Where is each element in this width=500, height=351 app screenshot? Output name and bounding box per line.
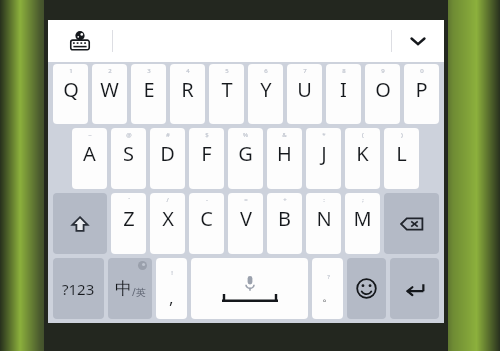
staticText: Q xyxy=(63,76,79,103)
button[interactable]: ; xyxy=(345,193,380,254)
staticText: 9 xyxy=(381,67,385,75)
staticText: ) xyxy=(401,131,403,139)
staticText: S xyxy=(123,140,134,167)
button[interactable]: $ xyxy=(189,128,224,189)
button[interactable]: & xyxy=(267,128,302,189)
staticText: & xyxy=(282,131,287,139)
staticText: W xyxy=(100,76,119,103)
staticText: 0 xyxy=(420,67,424,75)
staticText: M xyxy=(353,205,372,232)
staticText: 2 xyxy=(108,67,112,75)
button[interactable]: Enter xyxy=(390,258,439,319)
button[interactable]: ~ xyxy=(72,128,107,189)
button[interactable]: ` xyxy=(111,193,146,254)
staticText: ! xyxy=(171,269,173,277)
staticText: Y xyxy=(260,76,272,103)
button[interactable]: # xyxy=(150,128,185,189)
staticText: N xyxy=(316,205,332,232)
button[interactable]: Space xyxy=(191,258,308,319)
button[interactable]: 4 xyxy=(170,64,205,124)
button[interactable]: - xyxy=(189,193,224,254)
staticText: O xyxy=(375,76,391,103)
staticText: * xyxy=(322,131,326,139)
staticText: ( xyxy=(362,131,364,139)
button[interactable]: 9 xyxy=(365,64,400,124)
button[interactable]: 8 xyxy=(326,64,361,124)
staticText: J xyxy=(321,140,327,167)
button[interactable]: Hide keyboard xyxy=(392,20,444,62)
button[interactable]: ) xyxy=(384,128,419,189)
staticText: U xyxy=(297,76,312,103)
button[interactable]: : xyxy=(306,193,341,254)
button[interactable]: 2 xyxy=(92,64,127,124)
staticText: F xyxy=(201,140,212,167)
staticText: : xyxy=(323,196,325,204)
staticText: # xyxy=(166,131,170,139)
staticText: ; xyxy=(362,196,364,204)
staticText: E xyxy=(143,76,155,103)
staticText: K xyxy=(356,140,369,167)
staticText: I xyxy=(340,76,347,103)
staticText: / xyxy=(166,196,169,204)
staticText: V xyxy=(240,205,252,232)
button[interactable]: Chinese English toggle xyxy=(108,258,152,319)
staticText: 中 xyxy=(115,278,132,299)
staticText: 1 xyxy=(69,67,73,75)
button[interactable]: 1 xyxy=(53,64,88,124)
button[interactable]: ! xyxy=(156,258,187,319)
button[interactable]: Shift xyxy=(53,193,107,254)
staticText: D xyxy=(160,140,175,167)
staticText: 5 xyxy=(225,67,229,75)
staticText: 6 xyxy=(264,67,268,75)
button[interactable]: 0 xyxy=(404,64,439,124)
button[interactable]: 3 xyxy=(131,64,166,124)
staticText: ~ xyxy=(88,131,92,139)
staticText: $ xyxy=(205,131,209,139)
staticText: 4 xyxy=(186,67,190,75)
staticText: + xyxy=(283,196,287,204)
button[interactable]: ( xyxy=(345,128,380,189)
button[interactable]: = xyxy=(228,193,263,254)
staticText: 。 xyxy=(322,289,334,304)
button[interactable]: @ xyxy=(111,128,146,189)
staticText: 3 xyxy=(147,67,151,75)
staticText: ? xyxy=(327,273,330,281)
button[interactable]: 5 xyxy=(209,64,244,124)
staticText: 7 xyxy=(303,67,307,75)
button[interactable]: Backspace xyxy=(384,193,439,254)
staticText: % xyxy=(243,131,248,139)
staticText: L xyxy=(396,140,407,167)
staticText: R xyxy=(181,76,194,103)
button[interactable]: * xyxy=(306,128,341,189)
staticText: Z xyxy=(123,205,135,232)
button[interactable]: / xyxy=(150,193,185,254)
staticText: , xyxy=(169,286,174,309)
staticText: T xyxy=(221,76,233,103)
staticText: B xyxy=(278,205,291,232)
button[interactable]: 7 xyxy=(287,64,322,124)
staticText: - xyxy=(206,196,208,204)
staticText: = xyxy=(244,196,248,204)
staticText: ` xyxy=(128,196,130,204)
staticText: /英 xyxy=(132,285,146,299)
staticText: H xyxy=(277,140,292,167)
button[interactable]: + xyxy=(267,193,302,254)
staticText: @ xyxy=(126,131,132,139)
button[interactable]: ? xyxy=(312,258,343,319)
staticText: ?123 xyxy=(62,279,95,299)
button[interactable]: Change language xyxy=(48,20,112,62)
button[interactable]: % xyxy=(228,128,263,189)
staticText: A xyxy=(83,140,96,167)
button[interactable]: Emoji xyxy=(347,258,386,319)
button[interactable]: 6 xyxy=(248,64,283,124)
staticText: P xyxy=(415,76,428,103)
staticText: 8 xyxy=(342,67,346,75)
staticText: G xyxy=(238,140,253,167)
button[interactable]: Symbols xyxy=(53,258,104,319)
staticText: C xyxy=(200,205,213,232)
staticText: X xyxy=(162,205,174,232)
